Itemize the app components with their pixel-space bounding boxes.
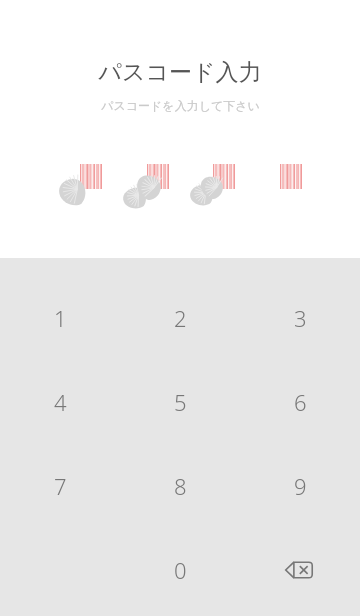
button[interactable]: 4 — [0, 360, 120, 444]
button[interactable]: 8 — [120, 444, 240, 528]
button[interactable]: Backspace — [240, 528, 360, 612]
staticText: 7 — [54, 471, 67, 501]
staticText: 8 — [174, 471, 187, 501]
staticText: パスコードを入力して下さい — [101, 98, 260, 113]
staticText: パスコード入力 — [98, 58, 262, 87]
button[interactable]: 6 — [240, 360, 360, 444]
staticText: 9 — [294, 471, 307, 501]
button[interactable]: 1 — [0, 276, 120, 360]
button[interactable]: 0 — [120, 528, 240, 612]
staticText: 6 — [294, 387, 307, 417]
staticText: 5 — [174, 387, 187, 417]
staticText: 1 — [54, 303, 67, 333]
staticText: 3 — [294, 303, 307, 333]
staticText: 2 — [174, 303, 187, 333]
button[interactable]: 2 — [120, 276, 240, 360]
staticText: 0 — [174, 555, 187, 585]
staticText: 4 — [54, 387, 67, 417]
button[interactable]: 9 — [240, 444, 360, 528]
button[interactable]: 7 — [0, 444, 120, 528]
button[interactable]: 5 — [120, 360, 240, 444]
button[interactable]: 3 — [240, 276, 360, 360]
